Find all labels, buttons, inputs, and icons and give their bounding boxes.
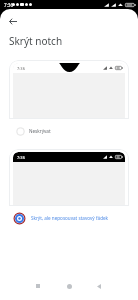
staticText: Neskrývat bbox=[29, 128, 51, 134]
button[interactable]: Recents bbox=[27, 275, 49, 297]
staticText: 7:36 bbox=[17, 66, 25, 71]
button[interactable] bbox=[11, 122, 29, 140]
button[interactable]: Home bbox=[58, 275, 80, 297]
staticText: 7:36 bbox=[4, 2, 14, 8]
staticText: Skrýt notch bbox=[9, 34, 63, 48]
button[interactable]: Back bbox=[88, 275, 110, 297]
button[interactable] bbox=[10, 209, 28, 227]
staticText: Skrýt, ale neposouvat stavový řádek bbox=[31, 215, 109, 221]
staticText: 7:36 bbox=[17, 155, 25, 160]
button[interactable]: Back bbox=[5, 13, 21, 29]
